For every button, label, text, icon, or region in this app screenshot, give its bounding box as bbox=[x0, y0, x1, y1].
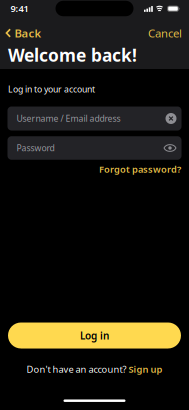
staticText: Username / Email address bbox=[16, 113, 120, 124]
staticText: Password bbox=[16, 142, 54, 154]
staticText: Back bbox=[15, 25, 42, 40]
button[interactable]: Forgot password? bbox=[99, 161, 189, 177]
button[interactable]: Cancel bbox=[148, 23, 189, 42]
staticText: Welcome back! bbox=[8, 43, 137, 66]
staticText: Don't have an account? bbox=[26, 363, 126, 375]
staticText: 9:41 bbox=[10, 2, 28, 15]
staticText: Sign up bbox=[128, 363, 162, 375]
staticText: Forgot password? bbox=[99, 163, 181, 175]
button[interactable]: Clear text bbox=[160, 106, 181, 130]
button[interactable]: Show password bbox=[158, 136, 181, 160]
staticText: Log in bbox=[80, 329, 109, 342]
staticText: Cancel bbox=[148, 25, 182, 40]
button[interactable]: Back bbox=[0, 23, 42, 42]
button[interactable]: Log in bbox=[8, 322, 181, 348]
button[interactable]: Sign up bbox=[128, 363, 162, 375]
staticText: Log in to your account bbox=[8, 83, 95, 95]
